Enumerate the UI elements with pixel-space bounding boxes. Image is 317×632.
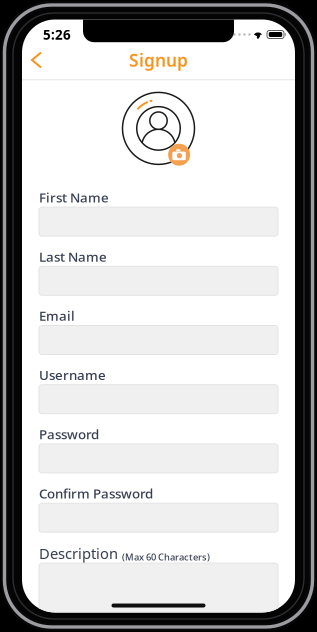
staticText: Signup	[129, 48, 188, 71]
staticText: Last Name	[39, 248, 107, 265]
staticText: Username	[39, 366, 106, 384]
staticText: Confirm Password	[39, 484, 153, 502]
staticText: Password	[39, 425, 99, 443]
button[interactable]: Back	[22, 41, 51, 78]
staticText: (Max 60 Characters)	[122, 551, 210, 563]
staticText: Email	[39, 307, 75, 324]
staticText: 5:26	[43, 26, 71, 43]
button[interactable]: Change profile photo	[122, 92, 194, 164]
staticText: Description	[39, 544, 118, 563]
staticText: First Name	[39, 188, 109, 206]
